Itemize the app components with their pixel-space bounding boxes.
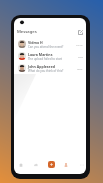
button[interactable]: Profile [60, 158, 72, 171]
button[interactable]: Home [15, 158, 27, 171]
staticText: 10:12 [76, 43, 83, 46]
button[interactable]: Discover [30, 158, 42, 171]
button[interactable]: Laura Martins [14, 50, 86, 62]
staticText: 9:03 [78, 55, 83, 58]
staticText: The upload failed to start [28, 57, 63, 61]
staticText: Vidmo H [28, 40, 43, 45]
staticText: Laura Martins [28, 52, 53, 57]
staticText: What do you think of this? [28, 69, 64, 73]
button[interactable]: More [76, 158, 86, 171]
staticText: John Appleseed [28, 64, 55, 69]
staticText: Messages [17, 29, 37, 35]
button[interactable]: Vidmo H [14, 38, 86, 50]
staticText: Mon [77, 67, 83, 70]
button[interactable]: John Appleseed [14, 62, 86, 74]
button[interactable]: Compose message [76, 28, 84, 36]
staticText: Can you attend the event? [28, 45, 64, 49]
button[interactable]: New message [48, 161, 55, 168]
